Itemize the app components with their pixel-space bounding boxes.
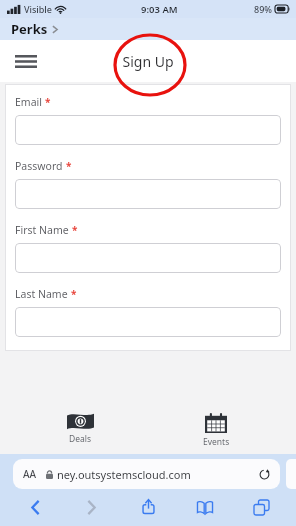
staticText: Visible xyxy=(24,3,52,15)
button[interactable]: Deals xyxy=(25,408,135,454)
staticText: Perks xyxy=(11,20,48,38)
button[interactable]: Share xyxy=(126,494,170,520)
staticText: Password xyxy=(15,159,63,173)
button[interactable]: First Name input xyxy=(15,243,281,273)
staticText: 9:03 AM xyxy=(141,3,178,16)
button[interactable]: Email input xyxy=(15,115,281,145)
staticText: Last Name xyxy=(15,287,68,301)
staticText: Events xyxy=(203,436,230,448)
staticText: * xyxy=(71,287,77,301)
staticText: 89% xyxy=(254,3,272,15)
staticText: * xyxy=(45,95,51,109)
staticText: Deals xyxy=(69,433,92,445)
button[interactable]: Forward xyxy=(69,494,113,520)
button[interactable]: Tabs xyxy=(239,494,283,520)
staticText: AA xyxy=(23,467,37,481)
staticText: * xyxy=(66,159,72,173)
staticText: * xyxy=(72,223,78,237)
button[interactable]: Bookmarks xyxy=(183,494,227,520)
staticText: Email xyxy=(15,95,42,109)
button[interactable]: Open menu xyxy=(10,48,42,74)
staticText: ney.outsystemscloud.com xyxy=(57,467,191,482)
button[interactable]: Last Name input xyxy=(15,307,281,337)
button[interactable]: Back xyxy=(13,494,57,520)
staticText: First Name xyxy=(15,223,69,237)
button[interactable]: Password input xyxy=(15,179,281,209)
button[interactable]: Events xyxy=(161,408,271,454)
staticText: Sign Up xyxy=(122,52,174,71)
button[interactable]: AA xyxy=(13,459,280,489)
button[interactable]: Perks xyxy=(0,18,296,40)
